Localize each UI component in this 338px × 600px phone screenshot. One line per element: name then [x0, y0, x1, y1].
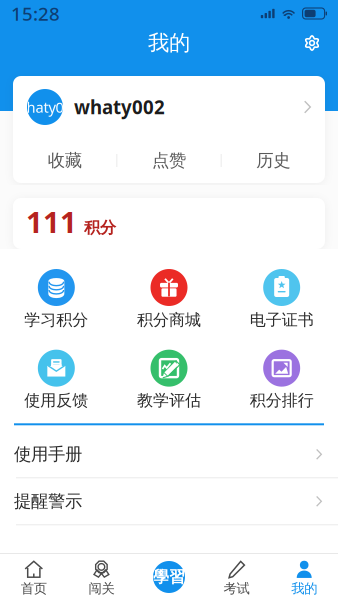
staticText: 点赞	[152, 150, 186, 171]
button[interactable]: 积分排行	[225, 350, 338, 410]
button[interactable]: 收藏	[13, 138, 116, 182]
button[interactable]: 历史	[222, 138, 325, 182]
button[interactable]: haty00	[13, 76, 325, 138]
staticText: 积分	[84, 218, 116, 237]
button[interactable]: 闯关	[68, 552, 135, 600]
staticText: 历史	[256, 150, 290, 171]
button[interactable]: 提醒警示	[0, 478, 338, 524]
staticText: 使用反馈	[24, 391, 88, 410]
staticText: 學習	[153, 567, 185, 587]
staticText: 提醒警示	[14, 491, 82, 512]
button[interactable]: 使用手册	[0, 431, 338, 477]
button[interactable]: 学习积分	[0, 269, 113, 330]
button[interactable]: 积分商城	[113, 269, 225, 330]
staticText: 考试	[224, 580, 250, 597]
button[interactable]: 点赞	[117, 138, 221, 182]
staticText: 收藏	[48, 150, 82, 171]
button[interactable]: 电子证书	[225, 269, 338, 330]
button[interactable]: Settings	[295, 28, 329, 58]
staticText: 我的	[148, 30, 190, 56]
button[interactable]: 首页	[0, 552, 68, 600]
staticText: 教学评估	[137, 391, 201, 410]
staticText: 15:28	[11, 1, 60, 26]
button[interactable]: 学习	[135, 555, 203, 599]
staticText: 电子证书	[250, 310, 314, 330]
staticText: 首页	[21, 580, 47, 597]
staticText: 积分排行	[250, 391, 314, 410]
button[interactable]: 考试	[203, 552, 270, 600]
staticText: 积分商城	[137, 310, 201, 330]
button[interactable]: 教学评估	[113, 350, 225, 410]
button[interactable]: 使用反馈	[0, 350, 113, 410]
button[interactable]: 我的	[270, 552, 338, 600]
staticText: 学习积分	[24, 310, 88, 330]
staticText: haty00	[26, 97, 71, 117]
staticText: 使用手册	[14, 444, 82, 465]
staticText: whaty002	[74, 95, 165, 119]
staticText: 我的	[291, 580, 317, 597]
staticText: 111	[26, 202, 77, 241]
staticText: 闯关	[88, 580, 114, 597]
